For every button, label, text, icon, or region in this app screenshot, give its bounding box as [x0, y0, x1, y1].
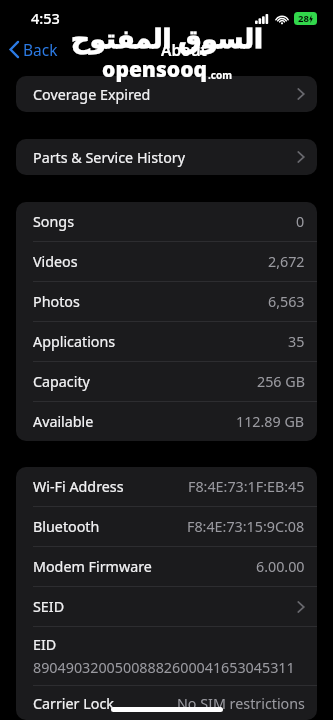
button[interactable]: Back [0, 35, 66, 64]
button[interactable]: EID [16, 627, 317, 685]
staticText: Photos [33, 292, 80, 311]
staticText: No SIM restrictions [177, 694, 305, 713]
staticText: Applications [33, 332, 116, 351]
staticText: 28 [298, 12, 309, 25]
staticText: السوق المفتوح [71, 20, 263, 55]
staticText: .com [208, 68, 232, 82]
staticText: EID [33, 635, 57, 654]
staticText: 89049032005008882600041653045311 [33, 658, 295, 677]
staticText: 6,563 [268, 292, 305, 311]
staticText: 112.89 GB [236, 412, 305, 431]
staticText: Available [33, 412, 94, 431]
staticText: 0 [296, 212, 305, 231]
staticText: Modem Firmware [33, 557, 152, 576]
staticText: Videos [33, 252, 78, 271]
staticText: 2,672 [268, 252, 305, 271]
staticText: 35 [288, 332, 305, 351]
staticText: Coverage Expired [33, 85, 151, 104]
button[interactable]: Coverage Expired [16, 76, 317, 112]
button[interactable]: Capacity [16, 362, 317, 401]
staticText: 6.00.00 [256, 557, 305, 576]
button[interactable]: Modem Firmware [16, 547, 317, 586]
staticText: Wi-Fi Address [33, 477, 124, 496]
button[interactable]: SEID [16, 587, 317, 626]
staticText: opensooq [102, 55, 208, 84]
staticText: Back [23, 39, 58, 60]
staticText: 256 GB [257, 372, 305, 391]
staticText: F8:4E:73:1F:EB:45 [188, 477, 305, 496]
staticText: SEID [33, 597, 65, 616]
staticText: 4:53 [31, 8, 60, 28]
button[interactable]: Wi-Fi Address [16, 467, 317, 506]
button[interactable]: Songs [16, 202, 317, 241]
staticText: Bluetooth [33, 517, 100, 536]
staticText: Songs [33, 212, 74, 231]
button[interactable]: Applications [16, 322, 317, 361]
button[interactable]: Parts & Service History [16, 139, 317, 175]
staticText: Parts & Service History [33, 148, 186, 167]
staticText: Capacity [33, 372, 90, 391]
button[interactable]: Photos [16, 282, 317, 321]
button[interactable]: Available [16, 402, 317, 441]
staticText: Carrier Lock [33, 694, 114, 713]
button[interactable]: Carrier Lock [16, 686, 317, 720]
staticText: About [161, 39, 207, 60]
button[interactable]: Videos [16, 242, 317, 281]
staticText: F8:4E:73:15:9C:08 [187, 517, 305, 536]
button[interactable]: Bluetooth [16, 507, 317, 546]
